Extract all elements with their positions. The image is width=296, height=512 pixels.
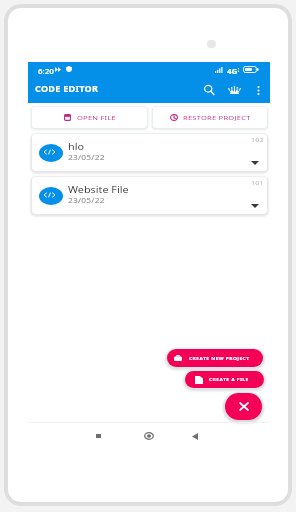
- button[interactable]: Close menu: [225, 393, 262, 420]
- staticText: CREATE NEW PROJECT: [189, 355, 250, 361]
- button[interactable]: Home: [139, 427, 159, 445]
- staticText: 101: [251, 178, 264, 186]
- button[interactable]: Website File: [32, 177, 267, 214]
- button[interactable]: RESTORE PROJECT: [153, 107, 267, 128]
- staticText: CODE EDITOR: [35, 83, 99, 93]
- staticText: RESTORE PROJECT: [183, 114, 251, 122]
- button[interactable]: CREATE NEW PROJECT: [167, 349, 263, 367]
- button[interactable]: Premium: [224, 80, 245, 100]
- button[interactable]: Back: [185, 427, 205, 445]
- staticText: CREATE A FILE: [209, 376, 249, 382]
- staticText: 102: [251, 135, 264, 143]
- staticText: 6:20: [38, 67, 54, 76]
- button[interactable]: Search: [199, 80, 220, 100]
- staticText: hlo: [68, 141, 84, 152]
- button[interactable]: More options: [249, 80, 268, 100]
- staticText: 4G: [227, 67, 238, 76]
- staticText: 23/05/22: [68, 195, 105, 204]
- staticText: Website File: [68, 184, 129, 195]
- staticText: 23/05/22: [68, 152, 105, 161]
- button[interactable]: CREATE A FILE: [185, 371, 264, 388]
- button[interactable]: OPEN FILE: [32, 107, 147, 128]
- staticText: OPEN FILE: [77, 114, 116, 122]
- button[interactable]: hlo: [32, 134, 267, 171]
- button[interactable]: Recent apps: [88, 427, 108, 445]
